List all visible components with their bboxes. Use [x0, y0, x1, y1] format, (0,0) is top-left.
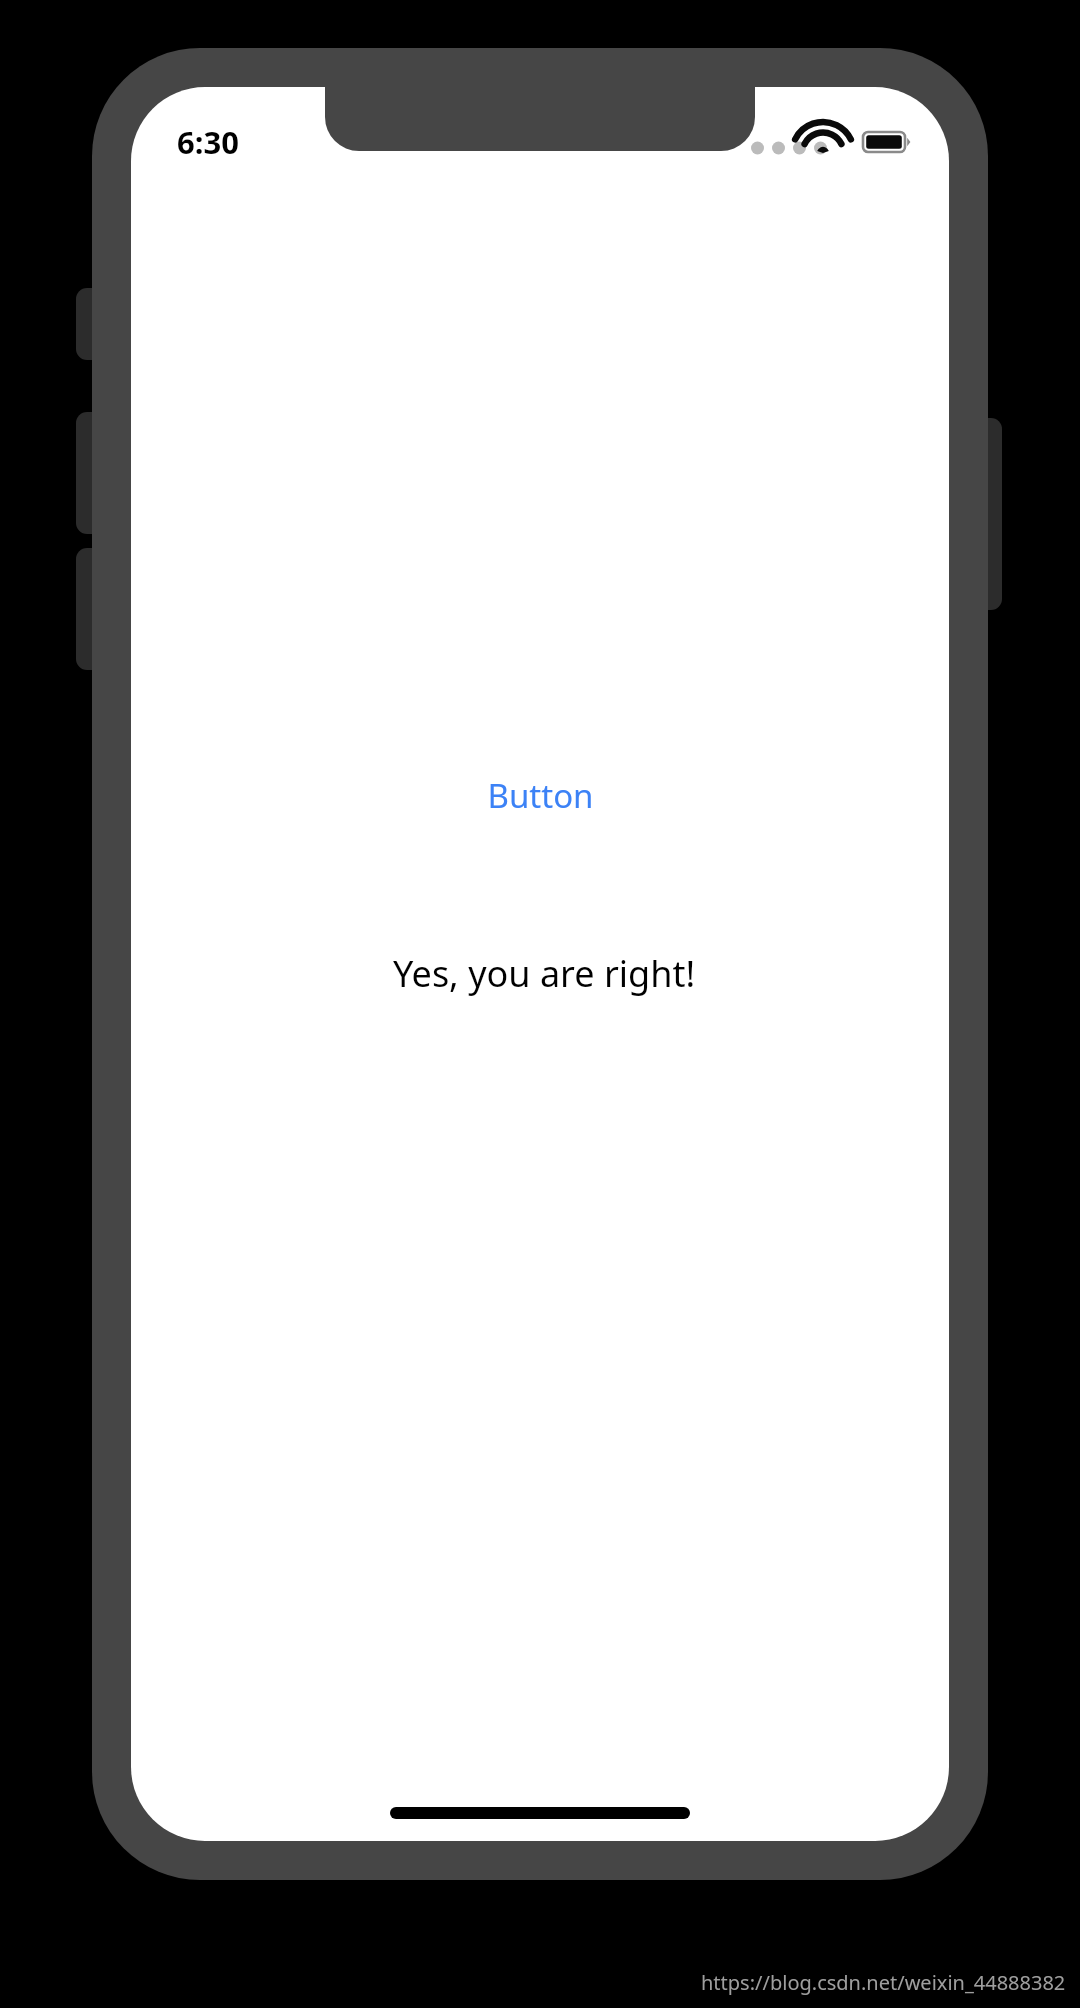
button[interactable]: Button [131, 773, 949, 818]
other: Signal, Wi-Fi and battery status [745, 122, 907, 162]
staticText: 6:30 [177, 121, 239, 163]
staticText: Yes, you are right! [393, 949, 696, 998]
staticText: https://blog.csdn.net/weixin_44888382 [701, 1969, 1066, 1996]
staticText: Button [487, 773, 594, 818]
